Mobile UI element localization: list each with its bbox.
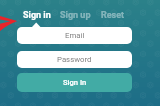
button[interactable]: Reset [94,7,132,24]
button[interactable]: Email [17,27,132,44]
button[interactable]: Sign up [56,7,94,24]
staticText: Reset [101,10,125,21]
staticText: Sign in [23,10,51,21]
staticText: Sign In [63,78,87,87]
button[interactable]: Sign In [17,73,132,92]
button[interactable]: Sign in [17,7,56,24]
staticText: Password [57,55,92,64]
staticText: Sign up [60,10,91,21]
staticText: Email [65,31,85,40]
button[interactable]: Password [17,51,132,68]
